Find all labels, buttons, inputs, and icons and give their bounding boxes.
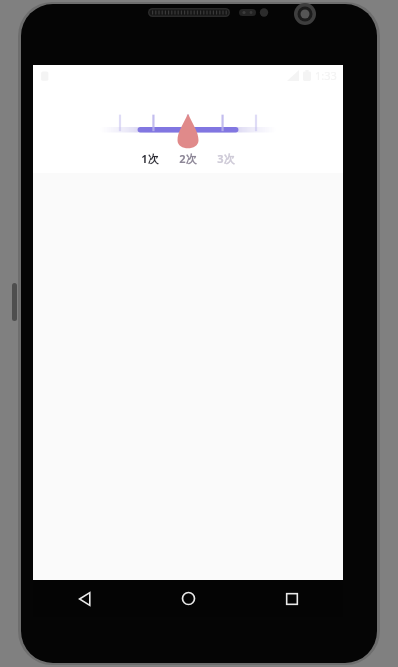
button[interactable]: 3次 <box>215 150 237 167</box>
button[interactable]: Dose frequency slider <box>33 112 343 148</box>
staticText: 3次 <box>217 151 235 166</box>
staticText: 1:33 <box>315 68 337 83</box>
button[interactable]: 2次 <box>177 150 199 167</box>
button[interactable]: Back <box>33 580 137 617</box>
staticText: 2次 <box>179 151 197 166</box>
button[interactable]: Recent apps <box>240 580 343 617</box>
button[interactable]: 1次 <box>139 150 161 167</box>
staticText: 1次 <box>141 151 159 166</box>
button[interactable]: Home <box>137 580 240 617</box>
